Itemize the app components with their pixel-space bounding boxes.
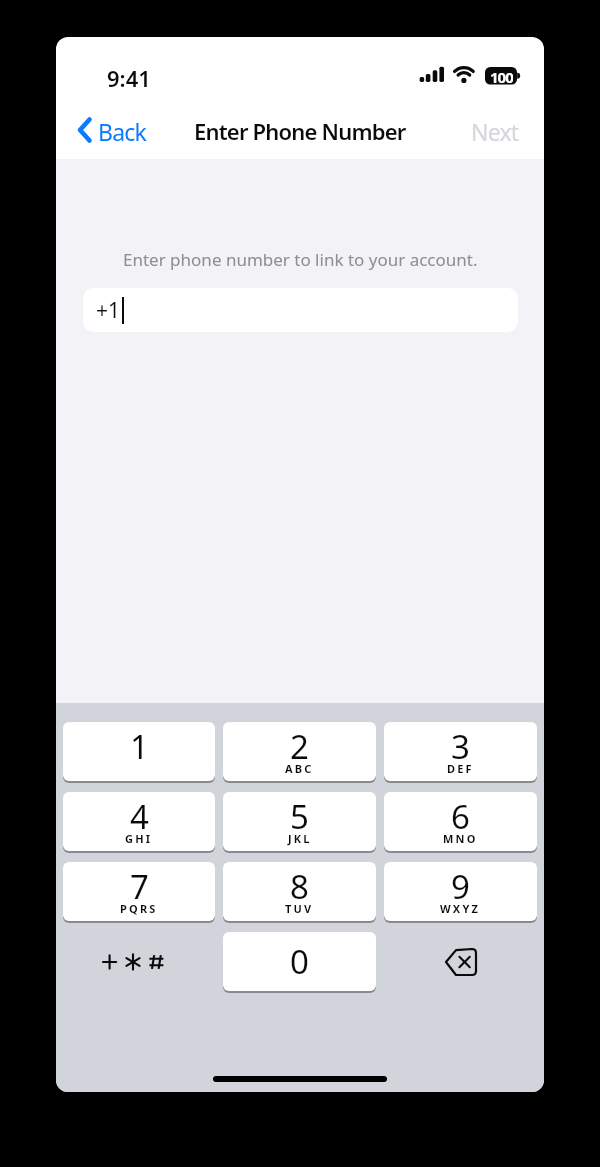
button[interactable]: 0 bbox=[223, 932, 376, 991]
staticText: 0 bbox=[290, 939, 309, 984]
staticText: Next bbox=[471, 116, 519, 147]
staticText: +1 bbox=[96, 296, 121, 325]
button[interactable]: 1 bbox=[63, 722, 215, 781]
button[interactable]: 3 bbox=[384, 722, 537, 781]
staticText: 2 bbox=[290, 724, 309, 769]
button[interactable] bbox=[63, 932, 215, 991]
button[interactable]: 9 bbox=[384, 862, 537, 921]
staticText: PQRS bbox=[120, 901, 158, 916]
button[interactable]: 5 bbox=[223, 792, 376, 851]
staticText: 9:41 bbox=[107, 63, 151, 93]
button[interactable]: +1 bbox=[83, 288, 518, 332]
button[interactable]: 4 bbox=[63, 792, 215, 851]
button[interactable]: 8 bbox=[223, 862, 376, 921]
button[interactable]: 7 bbox=[63, 862, 215, 921]
staticText: 9 bbox=[451, 864, 470, 909]
button[interactable] bbox=[78, 118, 92, 142]
staticText: 7 bbox=[130, 864, 149, 909]
staticText: TUV bbox=[285, 901, 314, 916]
staticText: GHI bbox=[125, 831, 153, 846]
staticText: DEF bbox=[447, 761, 474, 776]
button[interactable]: Next bbox=[471, 116, 519, 147]
staticText: 3 bbox=[451, 724, 470, 769]
button[interactable]: Back bbox=[98, 116, 146, 147]
staticText: Enter phone number to link to your accou… bbox=[123, 248, 478, 271]
staticText: Back bbox=[98, 116, 146, 147]
staticText: JKL bbox=[288, 831, 312, 846]
staticText: 4 bbox=[130, 794, 149, 839]
staticText: 8 bbox=[290, 864, 309, 909]
staticText: 5 bbox=[290, 794, 309, 839]
staticText: ABC bbox=[285, 761, 314, 776]
staticText: MNO bbox=[443, 831, 478, 846]
staticText: WXYZ bbox=[440, 901, 481, 916]
staticText: 1 bbox=[130, 724, 149, 769]
button[interactable] bbox=[384, 932, 537, 991]
staticText: Enter Phone Number bbox=[194, 116, 406, 146]
button[interactable]: 2 bbox=[223, 722, 376, 781]
button[interactable]: 6 bbox=[384, 792, 537, 851]
staticText: 100 bbox=[490, 67, 513, 85]
staticText: 6 bbox=[451, 794, 470, 839]
